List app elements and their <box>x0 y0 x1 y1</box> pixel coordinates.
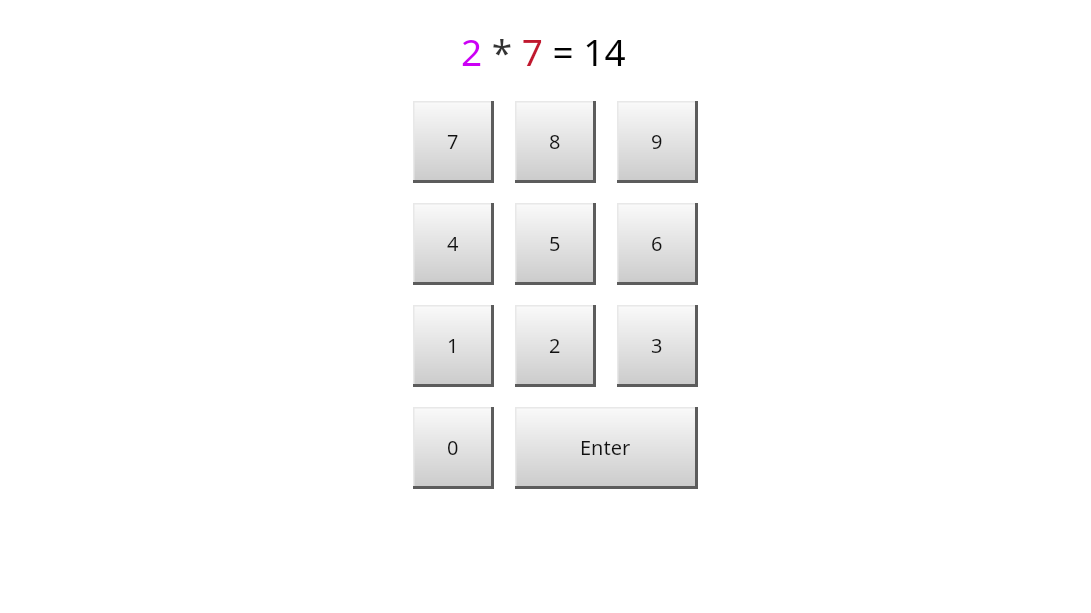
button[interactable]: 4 <box>413 203 494 285</box>
button[interactable]: 8 <box>515 101 596 183</box>
button[interactable]: 0 <box>413 407 494 489</box>
button[interactable]: 1 <box>413 305 494 387</box>
staticText: 1 <box>447 332 459 359</box>
button[interactable]: 3 <box>617 305 698 387</box>
staticText: 6 <box>651 230 663 257</box>
button[interactable]: 5 <box>515 203 596 285</box>
button[interactable]: 9 <box>617 101 698 183</box>
staticText: Enter <box>580 434 631 461</box>
staticText: 8 <box>549 128 561 155</box>
staticText: 9 <box>651 128 663 155</box>
button[interactable]: Enter <box>515 407 698 489</box>
staticText: 2 <box>549 332 561 359</box>
staticText: 0 <box>447 434 459 461</box>
button[interactable]: 7 <box>413 101 494 183</box>
staticText: 4 <box>447 230 459 257</box>
button[interactable]: 2 <box>515 305 596 387</box>
staticText: 2 * 7 = 14 <box>461 26 626 76</box>
staticText: 3 <box>651 332 663 359</box>
staticText: 5 <box>549 230 561 257</box>
staticText: 7 <box>447 128 459 155</box>
button[interactable]: 6 <box>617 203 698 285</box>
